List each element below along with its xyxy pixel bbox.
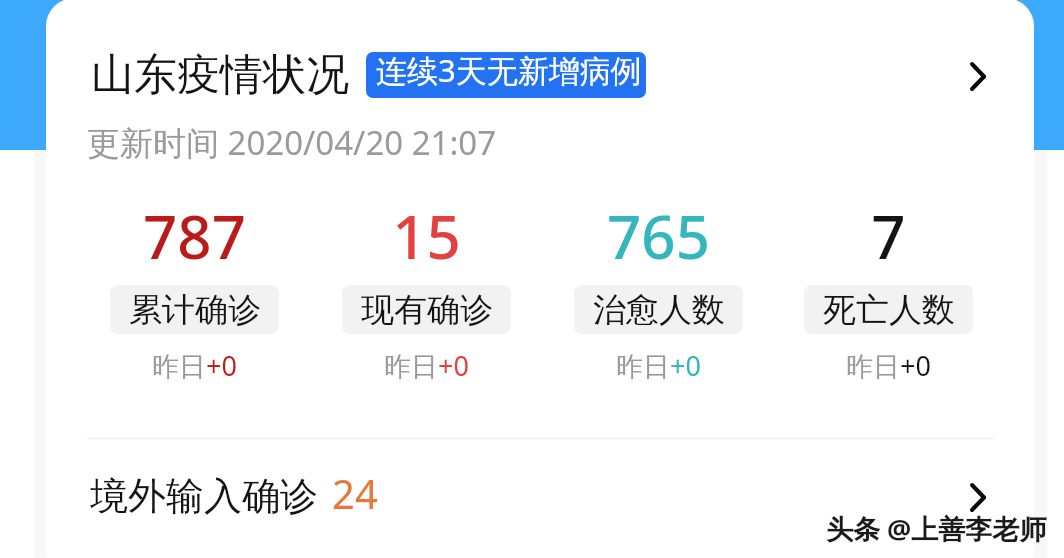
staticText: 山东疫情状况 [91,48,349,102]
staticText: 24 [332,466,378,520]
staticText: 昨日+0 [152,347,237,384]
staticText: 昨日+0 [384,347,469,384]
button[interactable]: 境外输入确诊 [46,439,1034,549]
button[interactable]: 765 [548,195,768,384]
staticText: 境外输入确诊 [90,472,318,520]
button[interactable]: Imported cases details [943,462,1013,532]
staticText: 昨日+0 [616,347,701,384]
staticText: 头条 @上善李老师 [826,510,1047,547]
staticText: 7 [871,195,906,277]
staticText: 昨日+0 [846,347,931,384]
staticText: 787 [143,195,246,277]
button[interactable]: 15 [316,195,536,384]
staticText: 765 [607,195,710,277]
button[interactable]: 连续3天无新增病例 [366,52,646,98]
button[interactable]: 787 [84,195,304,384]
staticText: 现有确诊 [361,289,493,331]
staticText: 死亡人数 [823,289,955,331]
button[interactable]: View details [943,41,1013,111]
staticText: 累计确诊 [129,289,261,331]
staticText: 治愈人数 [593,289,725,331]
staticText: 15 [392,195,461,277]
button[interactable]: 7 [778,195,998,384]
staticText: 连续3天无新增病例 [376,52,642,91]
staticText: 更新时间 2020/04/20 21:07 [87,120,497,165]
